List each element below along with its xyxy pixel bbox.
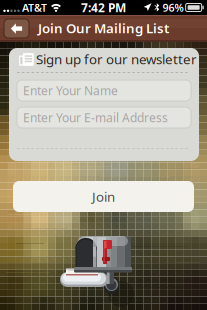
staticText: Enter Your Name [23, 82, 118, 98]
staticText: AT&T [22, 0, 47, 15]
staticText: Join Our Mailing List [38, 19, 169, 37]
staticText: Join [92, 188, 115, 205]
button[interactable]: Join [13, 181, 194, 212]
staticText: 7:42 PM [81, 0, 126, 15]
staticText: Sign up for our newsletter [36, 50, 197, 68]
staticText: Enter Your E-mail Address [23, 109, 168, 125]
staticText: 96% [162, 0, 183, 15]
button[interactable]: Back [4, 19, 29, 38]
